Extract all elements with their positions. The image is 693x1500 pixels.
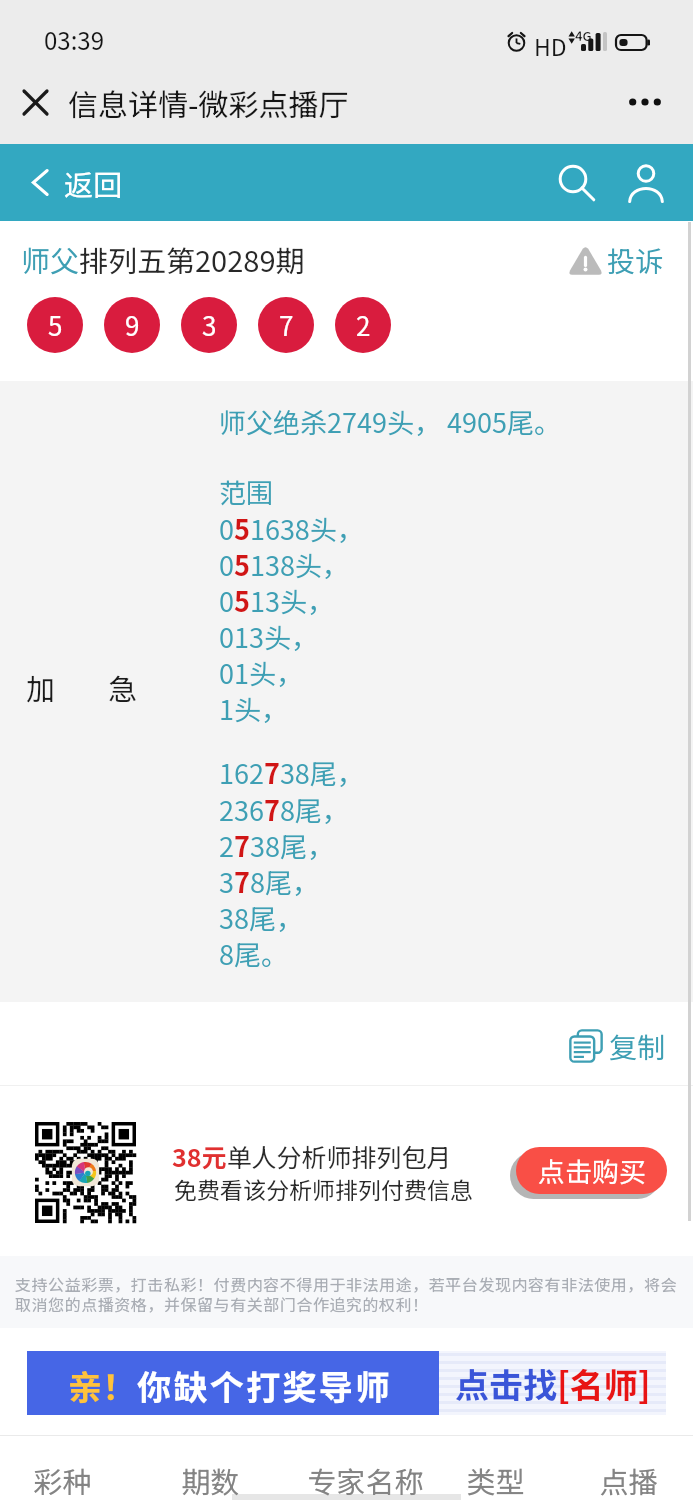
staticText: 5 — [48, 306, 63, 344]
staticText: 162738尾， 23678尾， 2738尾， 378尾， 38尾， 8尾。 — [219, 753, 364, 973]
staticText: 你缺个打奖导师 — [137, 1361, 392, 1410]
staticText: 3 — [202, 306, 217, 344]
staticText: 信息详情-微彩点播厅 — [68, 81, 349, 124]
staticText: 亲！ — [68, 1361, 136, 1410]
button[interactable]: 专家名称 — [305, 1457, 425, 1500]
staticText: 点击找[名师] — [455, 1359, 651, 1408]
staticText: 7 — [279, 306, 294, 344]
staticText: 支持公益彩票，打击私彩！付费内容不得用于非法用途，若平台发现内容有非法使用，将会 — [15, 1272, 678, 1295]
staticText: 返回 — [64, 162, 123, 204]
staticText: 点击购买 — [538, 1151, 646, 1190]
button[interactable]: More options — [622, 79, 668, 125]
staticText: 38元单人分析师排列包月 — [172, 1138, 452, 1174]
button[interactable]: 彩种 — [2, 1457, 122, 1500]
button[interactable]: 点击购买 — [516, 1147, 667, 1194]
staticText: 类型 — [466, 1459, 525, 1500]
staticText: 范围 051638头， 05138头， 0513头， 013头， 01头， 1头… — [219, 472, 364, 728]
staticText: 4G — [575, 26, 592, 45]
staticText: 投诉 — [607, 240, 664, 280]
button[interactable]: 投诉 — [568, 240, 664, 280]
staticText: 2 — [356, 306, 371, 344]
button[interactable]: Profile — [621, 158, 671, 208]
button[interactable]: Close — [13, 80, 57, 124]
staticText: HD — [534, 29, 567, 62]
staticText: 师父排列五第20289期 — [21, 238, 305, 280]
staticText: 加 — [26, 666, 56, 708]
staticText: 取消您的点播资格，并保留与有关部门合作追究的权利！ — [15, 1292, 429, 1315]
button[interactable]: 返回 — [32, 144, 123, 221]
staticText: 师父绝杀2749头， 4905尾。 — [219, 402, 561, 441]
staticText: 9 — [125, 306, 140, 344]
button[interactable]: Search — [552, 158, 602, 208]
button[interactable]: 点播 — [568, 1457, 688, 1500]
staticText: 专家名称 — [307, 1459, 424, 1500]
button[interactable]: 期数 — [150, 1457, 270, 1500]
staticText: 复制 — [609, 1026, 666, 1067]
staticText: 点播 — [599, 1459, 658, 1500]
button[interactable]: 复制 — [569, 1020, 666, 1072]
staticText: 免费看该分析师排列付费信息 — [174, 1172, 473, 1205]
button[interactable]: 类型 — [435, 1457, 555, 1500]
staticText: 03:39 — [44, 22, 104, 57]
staticText: 急 — [108, 666, 138, 708]
staticText: 期数 — [181, 1459, 240, 1500]
button[interactable]: 亲！ — [27, 1351, 666, 1415]
staticText: 彩种 — [33, 1459, 92, 1500]
